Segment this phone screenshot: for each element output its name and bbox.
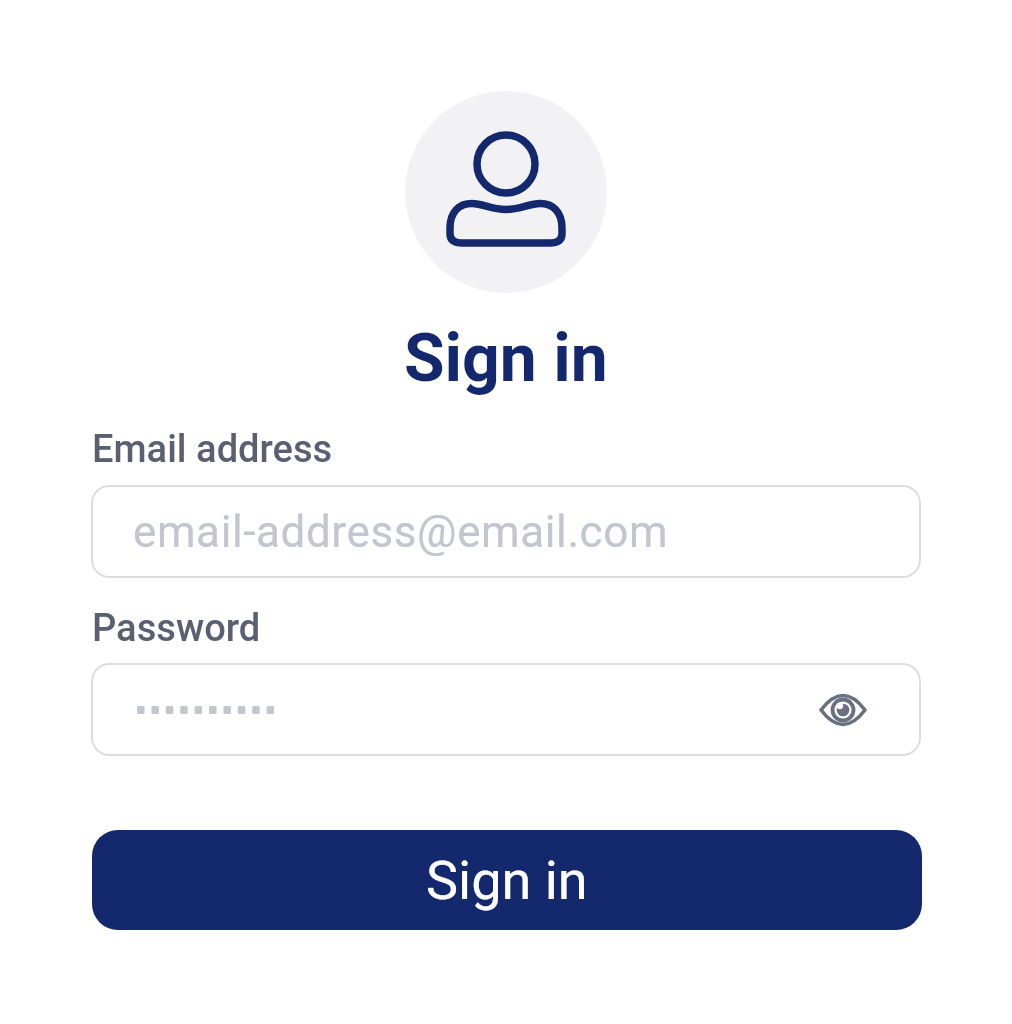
- button[interactable]: Sign in: [92, 830, 922, 930]
- staticText: email-address@email.com: [133, 506, 669, 558]
- button[interactable]: [91, 663, 921, 756]
- staticText: Sign in: [404, 320, 608, 397]
- staticText: Sign in: [426, 849, 588, 912]
- button[interactable]: [815, 682, 871, 738]
- staticText: Email address: [92, 427, 333, 472]
- button[interactable]: email-address@email.com: [91, 485, 921, 578]
- staticText: Password: [92, 606, 261, 651]
